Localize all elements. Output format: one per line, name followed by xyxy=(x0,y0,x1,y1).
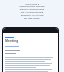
staticText: Meeting xyxy=(5,39,19,43)
staticText: You'll have a professionally worked emai… xyxy=(0,2,64,20)
